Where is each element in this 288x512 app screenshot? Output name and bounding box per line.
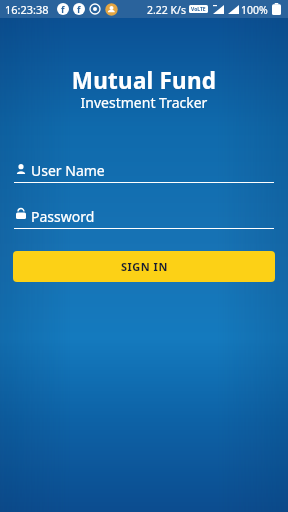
staticText: SIGN IN <box>121 259 168 274</box>
button[interactable]: Password <box>14 205 274 230</box>
staticText: Mutual Fund <box>0 65 288 96</box>
button[interactable]: SIGN IN <box>13 251 275 282</box>
staticText: f <box>61 3 65 15</box>
staticText: Password <box>31 207 95 226</box>
staticText: VoLTE <box>191 6 206 13</box>
staticText: Investment Tracker <box>0 93 288 112</box>
staticText: 2.22 K/s <box>147 3 186 17</box>
staticText: f <box>77 3 81 15</box>
staticText: 16:23:38 <box>5 2 49 17</box>
button[interactable]: User Name <box>14 160 274 184</box>
staticText: User Name <box>31 161 105 180</box>
staticText: 100% <box>241 3 268 17</box>
